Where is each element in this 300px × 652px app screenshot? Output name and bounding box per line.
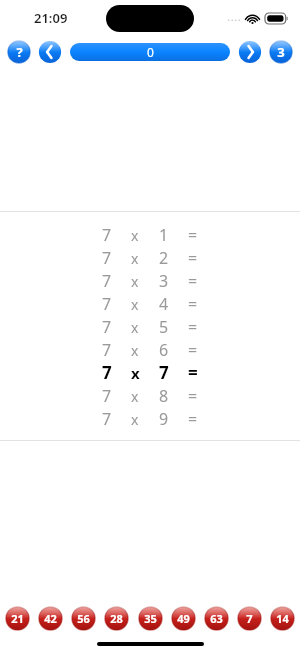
staticText: 7 [102,293,112,315]
staticText: x [131,363,140,383]
staticText: 7 [159,361,169,384]
staticText: ? [16,43,23,61]
staticText: 7 [102,224,112,246]
staticText: = [188,385,198,407]
staticText: 7 [102,339,112,361]
staticText: 5 [159,316,169,338]
staticText: 14 [276,611,289,626]
button[interactable]: 21 [4,605,31,632]
staticText: 56 [77,611,90,626]
button[interactable]: 0 [70,43,230,61]
staticText: 28 [110,611,123,626]
staticText: = [188,270,198,292]
staticText: = [188,293,198,315]
button[interactable]: 7 [102,361,198,384]
staticText: 3 [159,270,169,292]
staticText: 7 [102,385,112,407]
button[interactable]: 35 [137,605,164,632]
button[interactable]: 28 [103,605,130,632]
staticText: 7 [246,611,253,626]
staticText: 42 [44,611,57,626]
button[interactable]: 7 [102,338,198,361]
staticText: = [188,408,198,430]
staticText: x [131,341,139,360]
staticText: 21 [11,611,24,626]
staticText: 4 [159,293,169,315]
staticText: 6 [159,339,169,361]
button[interactable]: 7 [102,384,198,407]
button[interactable]: 7 [102,315,198,338]
button[interactable]: Help [6,39,32,65]
staticText: 7 [102,247,112,269]
staticText: 2 [159,247,169,269]
staticText: x [131,272,139,291]
button[interactable]: 7 [102,246,198,269]
staticText: = [188,224,198,246]
staticText: 7 [102,361,112,384]
button[interactable]: 42 [37,605,64,632]
staticText: 7 [102,270,112,292]
button[interactable]: 63 [203,605,230,632]
button[interactable]: 49 [170,605,197,632]
staticText: = [188,361,198,384]
button[interactable]: 7 [102,292,198,315]
staticText: x [131,318,139,337]
staticText: x [131,249,139,268]
staticText: 8 [159,385,169,407]
staticText: 7 [102,408,112,430]
staticText: 21:09 [34,9,68,27]
button[interactable]: 56 [70,605,97,632]
staticText: 3 [277,43,285,61]
staticText: 1 [159,224,169,246]
button[interactable]: 7 [236,605,263,632]
button[interactable]: 7 [102,407,198,430]
staticText: 63 [210,611,223,626]
staticText: 0 [147,44,154,60]
button[interactable]: 7 [102,269,198,292]
staticText: x [131,387,139,406]
button[interactable]: Level 3 [268,39,294,65]
staticText: = [188,247,198,269]
staticText: = [188,339,198,361]
button[interactable]: Next [237,39,263,65]
staticText: = [188,316,198,338]
button[interactable]: 7 [102,223,198,246]
button[interactable]: Previous [37,39,63,65]
staticText: 35 [144,611,157,626]
button[interactable]: 14 [269,605,296,632]
staticText: 9 [159,408,169,430]
staticText: x [131,295,139,314]
staticText: x [131,226,139,245]
staticText: x [131,410,139,429]
staticText: 49 [177,611,190,626]
staticText: 7 [102,316,112,338]
